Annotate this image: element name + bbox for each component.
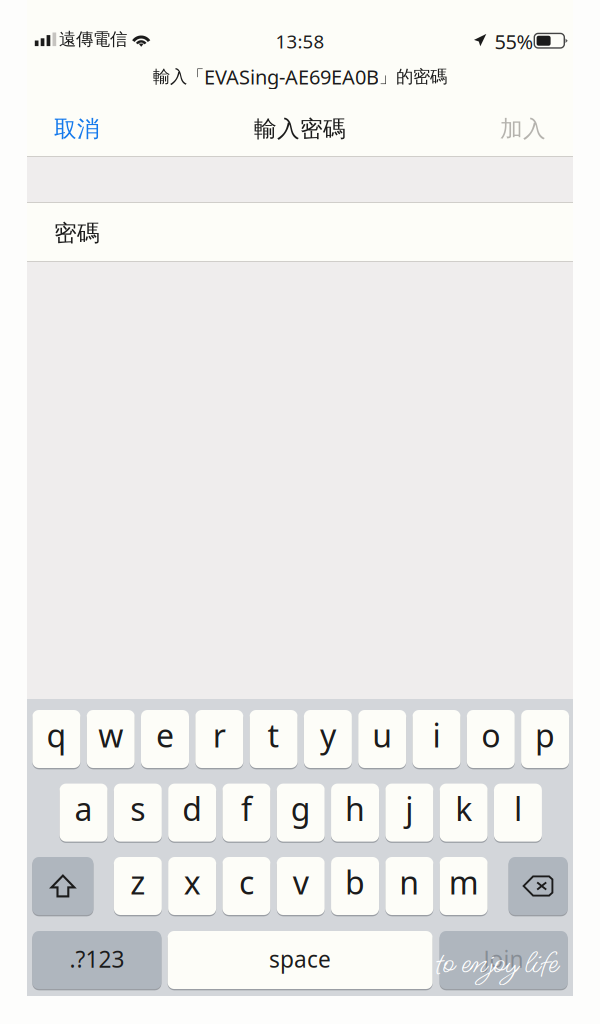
button[interactable]: m (440, 856, 488, 916)
staticText: p (535, 714, 555, 756)
staticText: o (481, 714, 500, 756)
staticText: 55% (494, 28, 533, 55)
button[interactable]: h (331, 782, 379, 843)
staticText: 的密碼 (396, 66, 447, 87)
staticText: q (46, 714, 66, 756)
button[interactable]: 加入 (491, 102, 555, 156)
button[interactable]: u (358, 709, 406, 769)
staticText: j (405, 787, 413, 830)
staticText: 「 (187, 66, 204, 87)
staticText: 13:58 (275, 29, 324, 54)
button[interactable]: r (195, 709, 243, 769)
button[interactable]: p (521, 709, 569, 769)
staticText: g (291, 787, 311, 830)
button[interactable]: w (87, 709, 135, 769)
staticText: 輸入 (153, 66, 187, 87)
button[interactable]: k (440, 782, 488, 843)
staticText: h (345, 787, 365, 830)
staticText: to enjoy life (435, 941, 557, 987)
button[interactable]: t (250, 709, 298, 769)
staticText: 取消 (54, 115, 100, 143)
button[interactable]: x (168, 856, 216, 916)
button[interactable]: d (168, 782, 216, 843)
button[interactable]: z (114, 856, 162, 916)
staticText: u (372, 714, 392, 756)
button[interactable]: 取消 (45, 102, 109, 156)
button[interactable]: Join (440, 930, 568, 990)
button[interactable]: e (141, 709, 189, 769)
button[interactable]: j (385, 782, 433, 843)
button[interactable]: Shift (32, 856, 93, 916)
staticText: y (320, 714, 336, 756)
staticText: i (432, 714, 440, 756)
button[interactable]: .?123 (32, 930, 161, 990)
button[interactable]: 密碼 (27, 203, 573, 261)
staticText: e (156, 714, 174, 756)
staticText: z (130, 861, 145, 903)
staticText: w (98, 714, 123, 756)
button[interactable]: n (385, 856, 433, 916)
staticText: 密碼 (54, 219, 100, 247)
staticText: t (268, 714, 280, 756)
button[interactable]: y (304, 709, 352, 769)
staticText: .?123 (69, 944, 124, 974)
button[interactable]: v (277, 856, 325, 916)
staticText: d (182, 787, 202, 830)
button[interactable]: c (222, 856, 270, 916)
button[interactable]: q (32, 709, 80, 769)
staticText: s (130, 787, 145, 830)
staticText: v (293, 861, 309, 903)
button[interactable]: f (222, 782, 270, 843)
staticText: x (184, 861, 201, 903)
button[interactable]: g (277, 782, 325, 843)
staticText: c (239, 861, 254, 903)
staticText: n (399, 861, 419, 903)
button[interactable]: a (59, 782, 107, 843)
staticText: EVASing-AE69EA0B (204, 63, 379, 90)
button[interactable]: space (168, 930, 433, 990)
staticText: b (345, 861, 365, 903)
staticText: Join (484, 944, 524, 974)
button[interactable]: o (467, 709, 515, 769)
button[interactable]: b (331, 856, 379, 916)
staticText: k (455, 787, 472, 830)
staticText: a (74, 787, 92, 830)
staticText: m (449, 861, 479, 903)
staticText: 加入 (500, 115, 546, 143)
staticText: r (213, 714, 226, 756)
staticText: 輸入密碼 (254, 115, 346, 143)
staticText: f (241, 787, 252, 830)
staticText: space (269, 944, 331, 974)
staticText: l (514, 787, 522, 830)
button[interactable]: s (114, 782, 162, 843)
staticText: 」 (379, 66, 396, 87)
button[interactable]: i (412, 709, 460, 769)
staticText: 遠傳電信 (59, 28, 127, 50)
button[interactable]: l (494, 782, 542, 843)
button[interactable]: Delete (509, 856, 568, 916)
